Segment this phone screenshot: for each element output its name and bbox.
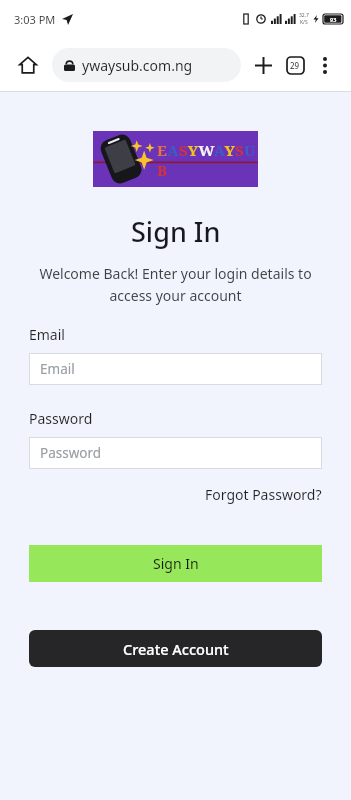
- button[interactable]: Password: [29, 437, 322, 469]
- staticText: Password: [29, 409, 93, 428]
- staticText: Sign In: [131, 213, 221, 250]
- staticText: ywaysub.com.ng: [82, 56, 193, 75]
- staticText: Welcome Back! Enter your login details t…: [27, 264, 324, 305]
- button[interactable]: Email: [29, 353, 322, 385]
- staticText: Password: [40, 444, 102, 462]
- staticText: EASYWAYSUB: [157, 140, 258, 180]
- staticText: 93: [330, 16, 337, 23]
- staticText: Create Account: [123, 639, 229, 659]
- staticText: 29: [290, 60, 300, 71]
- button[interactable]: Create Account: [29, 630, 322, 667]
- staticText: Email: [29, 325, 65, 344]
- button[interactable]: ywaysub.com.ng: [52, 48, 241, 82]
- staticText: 32.7: [299, 12, 309, 19]
- button[interactable]: Forgot Password?: [205, 485, 322, 504]
- staticText: K/S: [300, 19, 308, 26]
- button[interactable]: Sign In: [29, 545, 322, 582]
- staticText: Email: [40, 360, 75, 378]
- button[interactable]: Tabs, 29 open: [283, 53, 307, 77]
- staticText: Sign In: [153, 554, 199, 573]
- button[interactable]: More options: [311, 51, 339, 79]
- button[interactable]: Home: [12, 49, 44, 81]
- button[interactable]: New tab: [247, 49, 279, 81]
- staticText: 3:03 PM: [14, 12, 56, 27]
